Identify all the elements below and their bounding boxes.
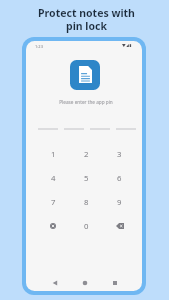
staticText: 0 (84, 221, 89, 232)
staticText: 3 (117, 149, 122, 160)
staticText: 8 (84, 197, 89, 208)
staticText: 5 (84, 173, 89, 184)
button[interactable]: 2 (70, 142, 103, 166)
button[interactable]: 7 (36, 190, 70, 214)
button[interactable]: 0 (70, 214, 103, 238)
button[interactable]: Back (50, 278, 60, 288)
button[interactable]: Clear (36, 214, 70, 238)
staticText: 2 (84, 149, 89, 160)
staticText: 9 (117, 197, 122, 208)
staticText: 6 (117, 173, 122, 184)
staticText: Protect notes with pin lock (2, 6, 169, 33)
button[interactable]: 4 (36, 166, 70, 190)
button[interactable]: Backspace (103, 214, 136, 238)
button[interactable]: Home (80, 278, 90, 288)
button[interactable]: 9 (103, 190, 136, 214)
staticText: 7 (51, 197, 56, 208)
button[interactable]: 5 (70, 166, 103, 190)
staticText: Please enter the app pin (28, 99, 142, 105)
button[interactable]: 3 (103, 142, 136, 166)
staticText: 1:23 (35, 44, 43, 49)
button[interactable]: Recent apps (110, 278, 120, 288)
button[interactable]: 8 (70, 190, 103, 214)
staticText: 4 (51, 173, 56, 184)
button[interactable]: 1 (36, 142, 70, 166)
staticText: 1 (51, 149, 56, 160)
button[interactable]: 6 (103, 166, 136, 190)
